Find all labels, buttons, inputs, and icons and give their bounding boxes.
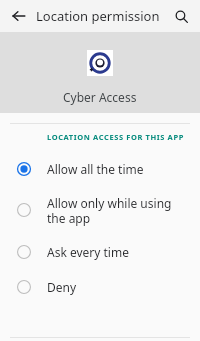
button[interactable]: Ask every time bbox=[0, 234, 200, 269]
button[interactable]: Search bbox=[168, 3, 194, 29]
staticText: Cyber Access bbox=[63, 89, 137, 105]
staticText: Deny bbox=[47, 279, 77, 295]
staticText: Ask every time bbox=[47, 244, 129, 260]
staticText: LOCATION ACCESS FOR THIS APP bbox=[47, 132, 184, 142]
staticText: Allow only while using the app bbox=[47, 195, 172, 226]
button[interactable]: Allow all the time bbox=[0, 151, 200, 186]
button[interactable]: Deny bbox=[0, 269, 200, 304]
staticText: Allow all the time bbox=[47, 161, 144, 177]
button[interactable]: Allow only while using the app bbox=[0, 186, 200, 234]
button[interactable]: Back bbox=[6, 3, 32, 29]
staticText: Location permission bbox=[36, 7, 160, 25]
